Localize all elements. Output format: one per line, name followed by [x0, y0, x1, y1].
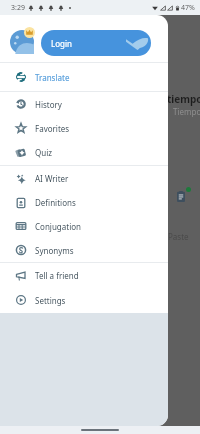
- staticText: Login: [51, 38, 72, 49]
- button[interactable]: Tell a friend: [0, 263, 168, 288]
- staticText: Translate: [35, 72, 70, 83]
- staticText: Conjugation: [35, 221, 81, 232]
- button[interactable]: History: [0, 92, 168, 116]
- button[interactable]: Translate: [0, 63, 168, 91]
- button[interactable]: Definitions: [0, 191, 168, 214]
- button[interactable]: AI Writer: [0, 166, 168, 191]
- button[interactable]: Login: [41, 30, 151, 56]
- staticText: Quiz: [35, 147, 53, 158]
- staticText: Settings: [35, 295, 66, 306]
- staticText: Tiempo: [173, 106, 200, 117]
- staticText: History: [35, 99, 62, 110]
- button[interactable]: Settings: [0, 288, 168, 312]
- staticText: Tell a friend: [35, 270, 79, 281]
- staticText: Paste: [168, 231, 189, 242]
- staticText: tiempo: [167, 92, 200, 106]
- button[interactable]: Quiz: [0, 140, 168, 165]
- button[interactable]: Profile: [10, 30, 34, 54]
- button[interactable]: Favorites: [0, 116, 168, 140]
- staticText: Synonyms: [35, 245, 74, 256]
- staticText: 47%: [181, 3, 195, 13]
- button[interactable]: Synonyms: [0, 238, 168, 262]
- staticText: Favorites: [35, 123, 70, 134]
- button[interactable]: Conjugation: [0, 214, 168, 238]
- staticText: 3:29: [11, 3, 25, 13]
- staticText: Definitions: [35, 197, 76, 208]
- staticText: AI Writer: [35, 173, 69, 184]
